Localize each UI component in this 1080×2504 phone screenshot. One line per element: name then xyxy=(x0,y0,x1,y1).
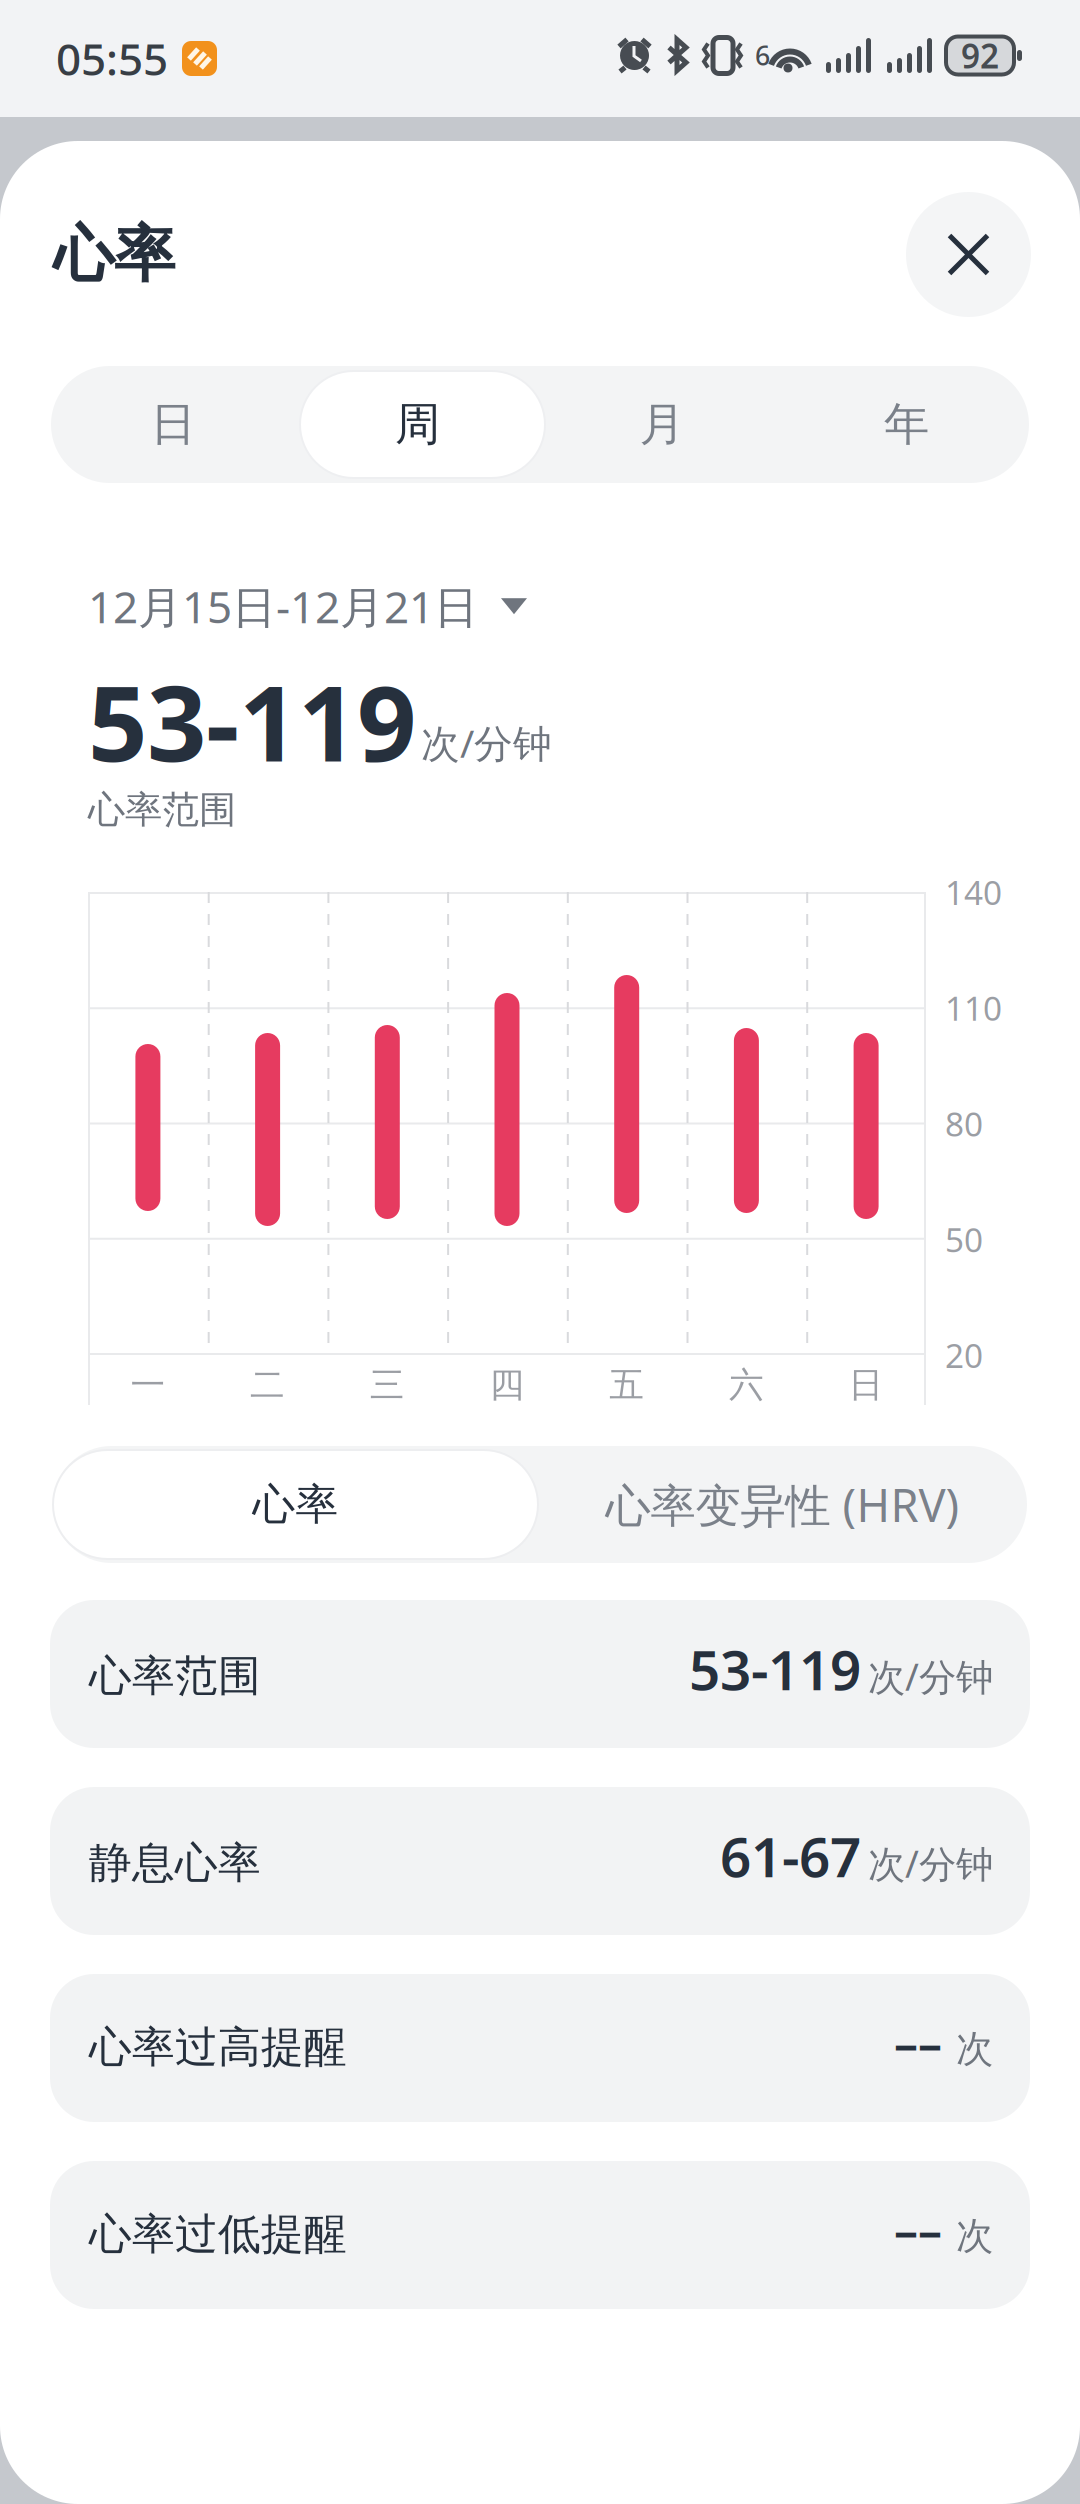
button[interactable]: 心率变异性 (HRV) xyxy=(538,1446,1027,1563)
staticText: 20 xyxy=(945,1333,983,1377)
staticText: 日 xyxy=(150,397,195,452)
staticText: 次/分钟 xyxy=(868,1651,993,1701)
staticText: 次 xyxy=(956,2213,993,2259)
button[interactable]: 静息心率 xyxy=(50,1787,1030,1935)
staticText: 12月15日-12月21日 xyxy=(88,577,478,635)
staticText: 92 xyxy=(961,33,999,78)
staticText: 三 xyxy=(370,1364,405,1406)
staticText: 53-119 xyxy=(689,1633,861,1705)
staticText: 心率 xyxy=(53,217,175,292)
staticText: 80 xyxy=(945,1101,983,1146)
staticText: 周 xyxy=(395,397,440,452)
staticText: 一 xyxy=(130,1364,165,1406)
staticText: 次/分钟 xyxy=(868,1838,993,1888)
staticText: 心率 xyxy=(252,1478,338,1531)
staticText: 110 xyxy=(945,986,1002,1030)
staticText: 五 xyxy=(609,1364,644,1406)
staticText: 心率范围 xyxy=(89,1650,261,1702)
button[interactable]: 心率 xyxy=(53,1446,538,1563)
button[interactable]: 心率范围 xyxy=(50,1600,1030,1748)
staticText: 心率范围 xyxy=(88,787,236,833)
staticText: –– xyxy=(894,2198,942,2262)
staticText: 05:55 xyxy=(56,29,168,88)
button[interactable]: 日 xyxy=(51,366,295,483)
staticText: 50 xyxy=(945,1217,983,1261)
staticText: 次 xyxy=(956,2026,993,2072)
staticText: 心率过高提醒 xyxy=(89,2021,347,2074)
staticText: 二 xyxy=(250,1364,285,1406)
staticText: 心率变异性 (HRV) xyxy=(605,1474,959,1535)
button[interactable]: 周 xyxy=(295,366,540,483)
staticText: 53-119 xyxy=(88,652,416,790)
staticText: 月 xyxy=(639,397,684,452)
staticText: 61-67 xyxy=(720,1820,861,1892)
staticText: 四 xyxy=(489,1364,524,1406)
staticText: 静息心率 xyxy=(89,1837,261,1889)
staticText: 140 xyxy=(945,870,1002,914)
button[interactable]: 月 xyxy=(540,366,784,483)
button[interactable]: 年 xyxy=(784,366,1029,483)
button[interactable]: Close xyxy=(906,192,1031,317)
staticText: 次/分钟 xyxy=(421,717,552,768)
staticText: 日 xyxy=(849,1364,884,1406)
staticText: 心率过低提醒 xyxy=(89,2208,347,2261)
button[interactable]: 心率过低提醒 xyxy=(50,2161,1030,2309)
staticText: 年 xyxy=(884,397,929,452)
button[interactable]: 心率过高提醒 xyxy=(50,1974,1030,2122)
staticText: 6 xyxy=(755,37,770,73)
staticText: –– xyxy=(894,2011,942,2075)
staticText: 六 xyxy=(729,1364,764,1406)
